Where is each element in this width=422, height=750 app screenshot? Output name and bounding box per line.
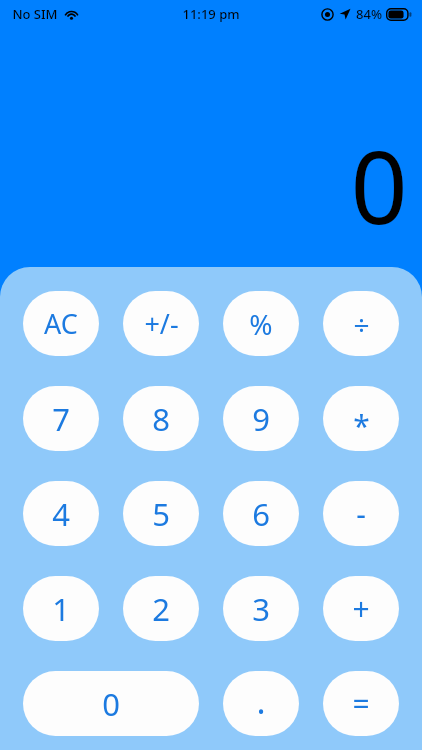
- staticText: 5: [152, 493, 170, 535]
- button[interactable]: +: [323, 576, 399, 641]
- staticText: -: [356, 493, 366, 534]
- button[interactable]: +/-: [123, 291, 199, 356]
- staticText: 84%: [356, 5, 382, 23]
- button[interactable]: 1: [23, 576, 99, 641]
- staticText: 7: [52, 398, 70, 440]
- staticText: AC: [44, 305, 78, 342]
- button[interactable]: 4: [23, 481, 99, 546]
- button[interactable]: 5: [123, 481, 199, 546]
- staticText: 1: [52, 588, 70, 630]
- button[interactable]: 6: [223, 481, 299, 546]
- staticText: 4: [52, 493, 70, 535]
- staticText: %: [249, 305, 273, 343]
- staticText: 9: [252, 398, 270, 440]
- button[interactable]: 7: [23, 386, 99, 451]
- button[interactable]: .: [223, 671, 299, 736]
- button[interactable]: ÷: [323, 291, 399, 356]
- staticText: =: [352, 683, 370, 724]
- button[interactable]: *: [323, 386, 399, 451]
- staticText: No SIM: [12, 5, 58, 23]
- button[interactable]: 0: [23, 671, 199, 736]
- button[interactable]: AC: [23, 291, 99, 356]
- staticText: .: [256, 678, 266, 724]
- button[interactable]: 3: [223, 576, 299, 641]
- staticText: 0: [102, 683, 120, 725]
- staticText: 2: [152, 588, 170, 630]
- staticText: 6: [252, 493, 270, 535]
- staticText: *: [353, 405, 370, 446]
- button[interactable]: =: [323, 671, 399, 736]
- staticText: 8: [152, 398, 170, 440]
- staticText: +/-: [144, 305, 179, 342]
- button[interactable]: 2: [123, 576, 199, 641]
- button[interactable]: %: [223, 291, 299, 356]
- button[interactable]: -: [323, 481, 399, 546]
- staticText: 3: [252, 588, 270, 630]
- staticText: 0: [350, 117, 408, 253]
- staticText: 11:19 pm: [182, 5, 240, 23]
- staticText: ÷: [353, 305, 370, 343]
- button[interactable]: 8: [123, 386, 199, 451]
- staticText: +: [352, 588, 370, 629]
- button[interactable]: 9: [223, 386, 299, 451]
